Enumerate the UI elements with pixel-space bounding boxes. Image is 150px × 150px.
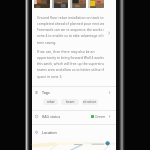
staticText: this week, which will free up the supers…: [37, 61, 104, 66]
button[interactable]: Photo: [88, 0, 104, 8]
staticText: completed ahead of planned pour next wee…: [37, 21, 104, 26]
staticText: rebar: [47, 100, 55, 104]
staticText: zone 4 to enable us to take advantage of…: [37, 33, 104, 38]
staticText: Green: [95, 114, 106, 119]
staticText: Ground floor rebar installation on track…: [37, 15, 104, 20]
button[interactable]: Tags: [32, 87, 116, 98]
staticText: structure: [83, 100, 97, 104]
button[interactable]: Photo: [52, 0, 68, 8]
staticText: Location: [42, 130, 57, 135]
staticText: opportunity to bring forward Wall 4 work…: [37, 55, 104, 60]
staticText: If we can, then there may also be an: [37, 49, 95, 54]
staticText: Tags: [42, 90, 50, 95]
button[interactable]: Location: [32, 127, 116, 138]
button[interactable]: Photo: [70, 0, 86, 8]
button[interactable]: structure: [82, 99, 98, 105]
other: Open: [107, 114, 112, 119]
button[interactable]: rebar: [43, 99, 58, 105]
staticText: teams area and allow us to better utilis…: [37, 67, 104, 72]
button[interactable]: Map: [32, 140, 116, 150]
other: Open: [106, 30, 112, 36]
staticText: RAG status: [42, 114, 61, 119]
button[interactable]: beam: [61, 99, 79, 105]
staticText: time saving.: [37, 40, 57, 45]
button[interactable]: Photo: [34, 0, 50, 8]
staticText: space in zone 3.: [37, 74, 63, 79]
other: Open: [107, 90, 112, 95]
staticText: Formwork can we re-sequence the works on: [37, 27, 104, 32]
button[interactable]: RAG status: [32, 111, 116, 122]
staticText: beam: [66, 100, 75, 104]
